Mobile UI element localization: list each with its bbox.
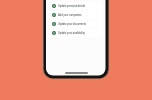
staticText: Update personal details — [58, 4, 86, 8]
staticText: Update your documents — [58, 22, 86, 26]
button[interactable]: Update your documents — [49, 20, 102, 28]
staticText: Update your availability — [58, 31, 85, 35]
staticText: Add your companies — [58, 13, 82, 17]
button[interactable]: Update your availability — [49, 29, 102, 37]
button[interactable]: Update personal details — [49, 2, 102, 10]
button[interactable]: Add your companies — [49, 11, 102, 19]
